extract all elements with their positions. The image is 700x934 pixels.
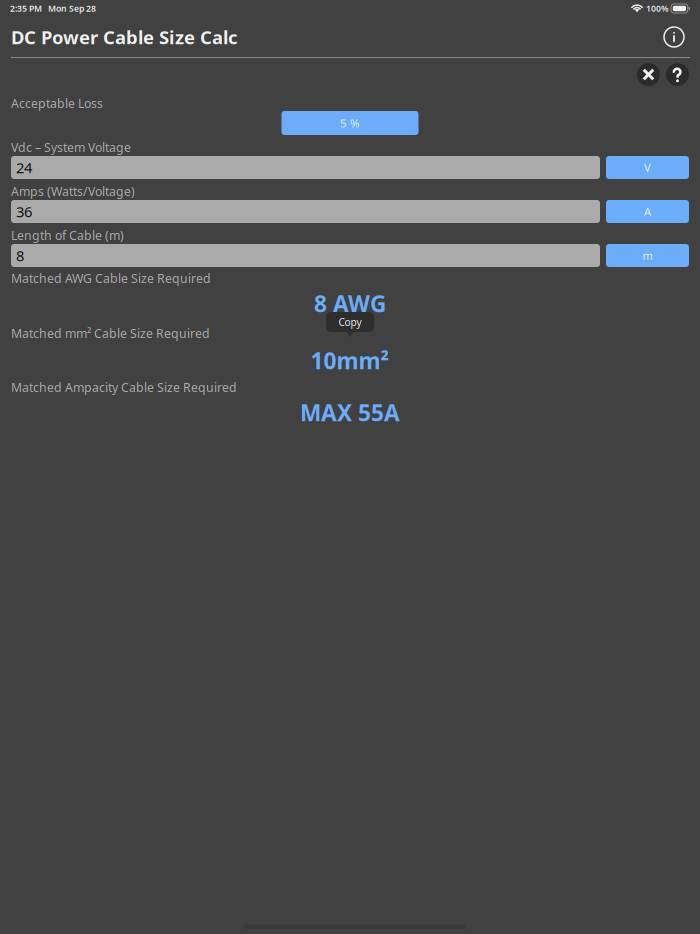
staticText: 36 xyxy=(16,201,32,221)
staticText: 8 AWG xyxy=(314,288,386,319)
staticText: V xyxy=(644,160,651,175)
staticText: 100% xyxy=(642,3,671,14)
button[interactable]: Help xyxy=(666,63,689,86)
button[interactable]: Info xyxy=(659,22,689,52)
staticText: 8 xyxy=(16,245,24,265)
staticText: Vdc – System Voltage xyxy=(11,139,131,156)
staticText: 5 % xyxy=(340,115,360,131)
staticText: 24 xyxy=(16,157,32,177)
button[interactable]: m xyxy=(606,244,689,267)
staticText: Matched Ampacity Cable Size Required xyxy=(11,379,237,396)
staticText: 10mm² xyxy=(310,345,389,376)
staticText: Amps (Watts/Voltage) xyxy=(11,183,135,200)
button[interactable]: V xyxy=(606,156,689,179)
staticText: Length of Cable (m) xyxy=(11,227,124,244)
staticText: 2:35 PM Mon Sep 28 xyxy=(10,3,96,14)
staticText: m xyxy=(642,248,652,263)
button[interactable]: Close xyxy=(637,63,660,86)
button[interactable]: 24 xyxy=(11,156,600,179)
button[interactable]: 8 xyxy=(11,244,600,267)
staticText: Matched AWG Cable Size Required xyxy=(11,270,211,287)
staticText: DC Power Cable Size Calc xyxy=(11,24,237,50)
button[interactable]: 36 xyxy=(11,200,600,223)
staticText: MAX 55A xyxy=(300,397,400,428)
staticText: Acceptable Loss xyxy=(11,95,103,112)
staticText: A xyxy=(644,204,651,219)
staticText: Copy xyxy=(338,315,361,329)
button[interactable]: 5 % xyxy=(281,111,418,135)
staticText: Matched mm² Cable Size Required xyxy=(11,325,210,342)
button[interactable]: A xyxy=(606,200,689,223)
